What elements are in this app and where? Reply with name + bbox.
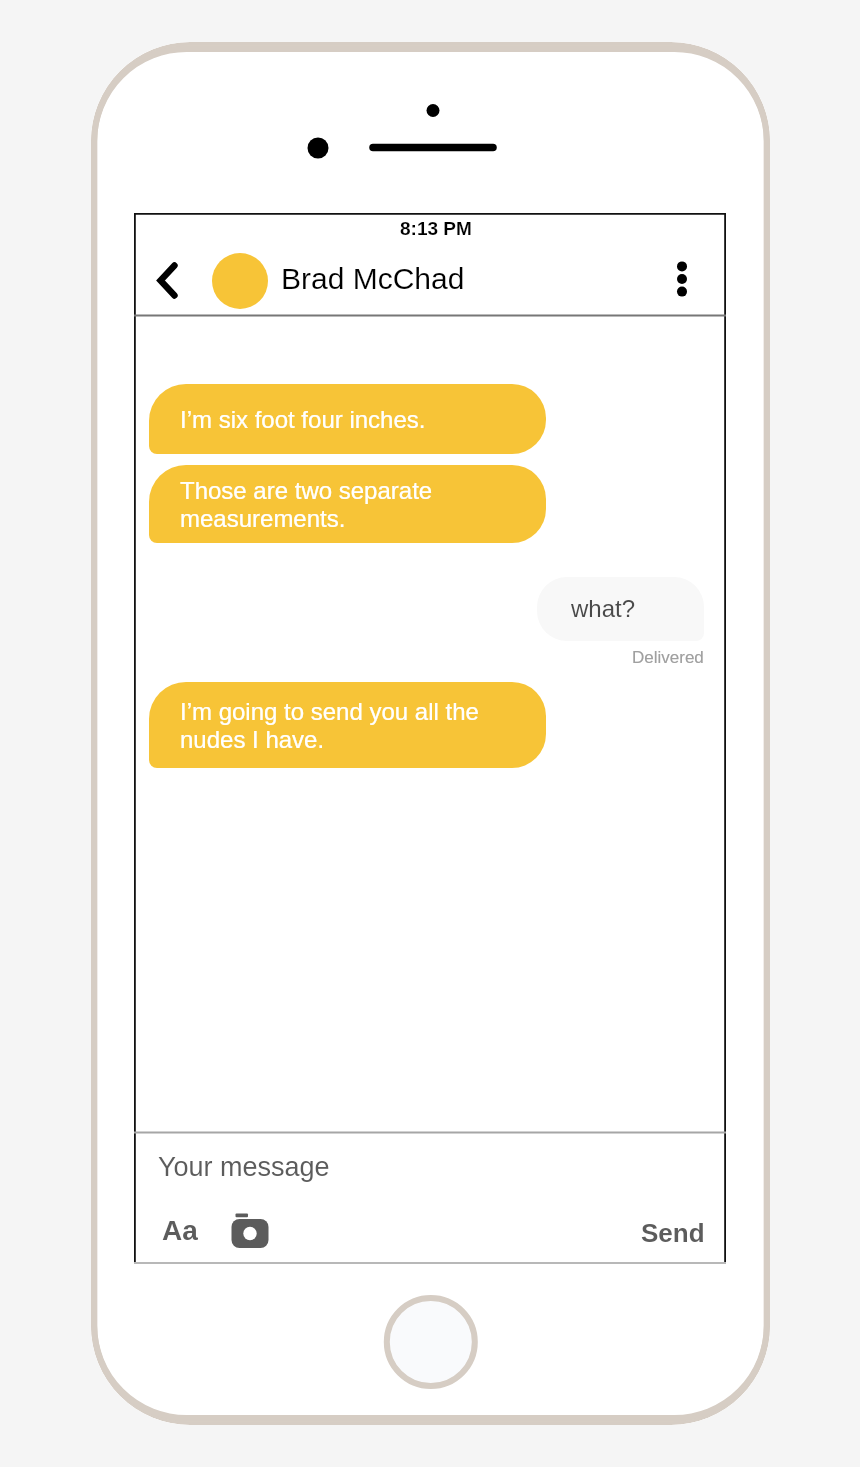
button[interactable]: what? — [537, 577, 704, 641]
staticText: Your message — [158, 1152, 330, 1182]
staticText: what? — [571, 595, 636, 622]
button[interactable]: Back — [143, 250, 191, 310]
button[interactable]: Contact photo — [212, 253, 268, 309]
button[interactable]: Those are two separate measurements. — [149, 465, 546, 543]
staticText: I’m going to send you all the nudes I ha… — [180, 698, 479, 753]
staticText: Delivered — [632, 648, 704, 667]
button[interactable]: Your message — [134, 1140, 726, 1195]
button[interactable]: Aa — [153, 1203, 207, 1258]
button[interactable]: I’m six foot four inches. — [149, 384, 546, 454]
staticText: Those are two separate measurements. — [180, 477, 433, 532]
staticText: Aa — [162, 1215, 198, 1246]
button[interactable]: I’m going to send you all the nudes I ha… — [149, 682, 546, 768]
button[interactable]: More options — [658, 255, 706, 303]
staticText: Send — [641, 1218, 705, 1247]
button[interactable]: Camera — [225, 1206, 275, 1255]
staticText: 8:13 PM — [400, 218, 472, 239]
button[interactable]: Send — [631, 1206, 715, 1259]
staticText: I’m six foot four inches. — [180, 406, 426, 433]
staticText: Brad McChad — [281, 262, 465, 296]
